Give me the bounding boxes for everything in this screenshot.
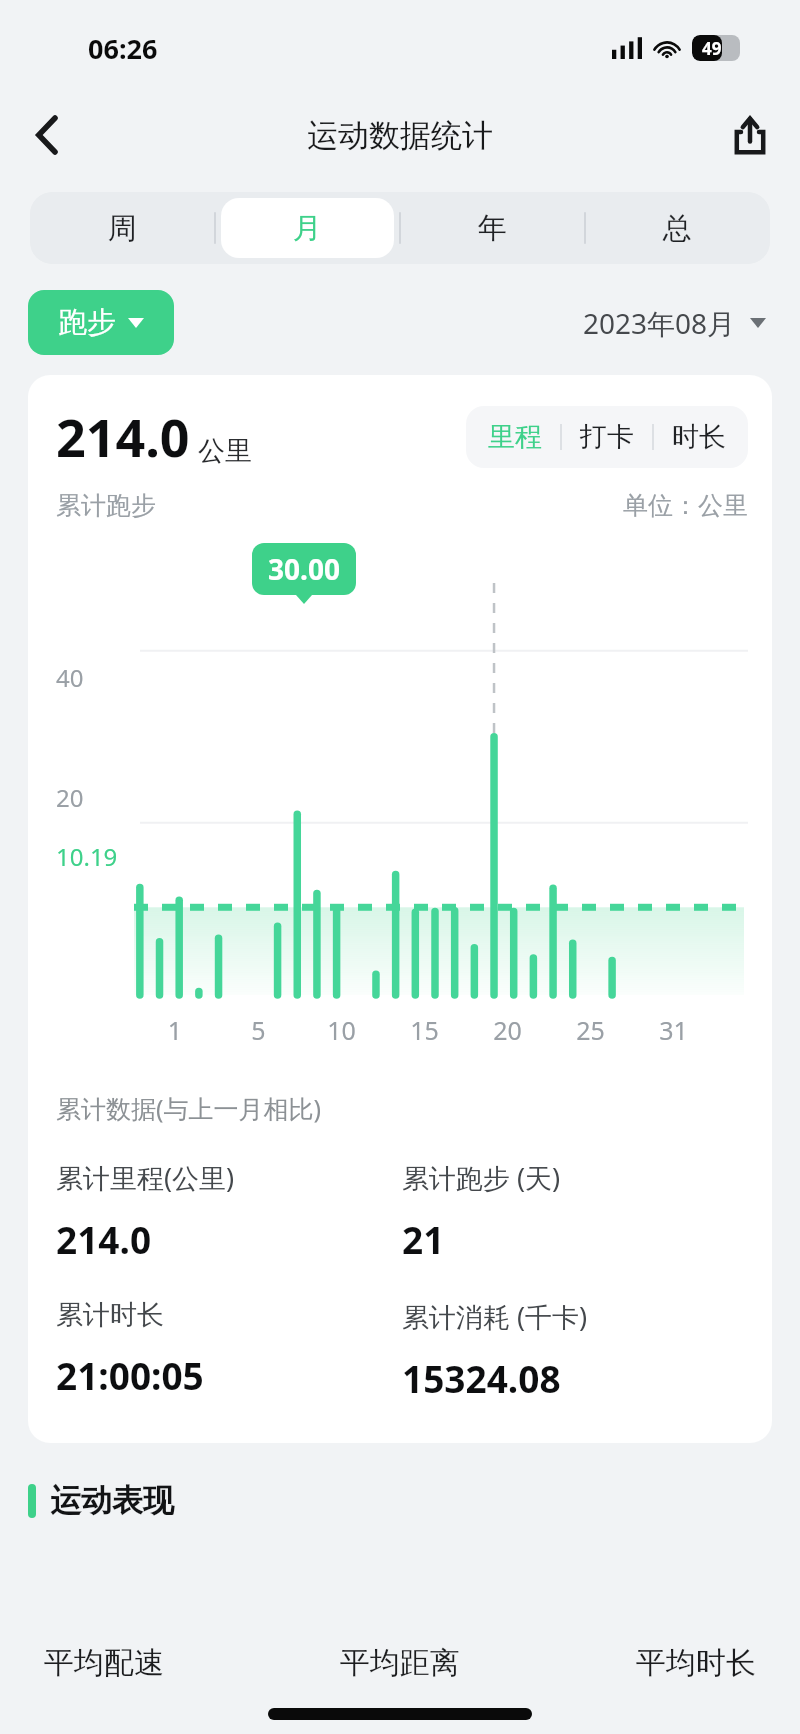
staticText: 里程 bbox=[488, 420, 542, 454]
staticText: 25 bbox=[549, 1013, 632, 1047]
staticText: 累计时长 bbox=[56, 1298, 164, 1332]
staticText: 公里 bbox=[198, 434, 252, 468]
staticText: 49 bbox=[702, 37, 722, 60]
staticText: 打卡 bbox=[580, 420, 634, 454]
button[interactable]: 打卡 bbox=[562, 410, 652, 464]
button[interactable]: 总 bbox=[591, 198, 764, 258]
staticText: 运动数据统计 bbox=[307, 116, 493, 155]
staticText: 10.19 bbox=[56, 840, 118, 873]
staticText: 周 bbox=[108, 210, 137, 247]
button[interactable]: 2023年08月 bbox=[577, 296, 772, 350]
staticText: 月 bbox=[293, 210, 322, 247]
staticText: 5 bbox=[217, 1013, 300, 1047]
staticText: 30.00 bbox=[268, 550, 340, 588]
staticText: 单位：公里 bbox=[623, 490, 748, 521]
staticText: 21:00:05 bbox=[56, 1350, 204, 1400]
staticText: 年 bbox=[478, 210, 507, 247]
staticText: 平均配速 bbox=[44, 1644, 164, 1682]
button[interactable]: 月 bbox=[221, 198, 394, 258]
button[interactable]: 跑步 bbox=[28, 290, 174, 355]
button[interactable]: Back bbox=[20, 107, 76, 163]
staticText: 214.0 bbox=[56, 1214, 152, 1264]
staticText: 累计数据(与上一月相比) bbox=[56, 1091, 322, 1125]
staticText: 21 bbox=[402, 1214, 445, 1264]
staticText: 15324.08 bbox=[402, 1353, 561, 1403]
staticText: 累计消耗 (千卡) bbox=[402, 1298, 588, 1335]
button[interactable]: 时长 bbox=[654, 410, 744, 464]
button[interactable]: 平均时长 bbox=[616, 1632, 776, 1694]
staticText: 1 bbox=[133, 1013, 217, 1047]
staticText: 累计里程(公里) bbox=[56, 1159, 235, 1196]
staticText: 214.0 bbox=[56, 401, 190, 472]
staticText: 2023年08月 bbox=[583, 304, 736, 342]
button[interactable]: 里程 bbox=[470, 410, 560, 464]
staticText: 累计跑步 (天) bbox=[402, 1159, 561, 1196]
staticText: 累计跑步 bbox=[56, 490, 156, 521]
button[interactable]: 平均配速 bbox=[24, 1632, 184, 1694]
staticText: 20 bbox=[56, 781, 84, 814]
button[interactable]: 周 bbox=[36, 198, 209, 258]
staticText: 06:26 bbox=[88, 30, 158, 67]
button[interactable]: 年 bbox=[406, 198, 579, 258]
staticText: 跑步 bbox=[58, 304, 116, 341]
staticText: 时长 bbox=[672, 420, 726, 454]
button[interactable]: 平均距离 bbox=[320, 1632, 480, 1694]
staticText: 40 bbox=[56, 661, 84, 694]
staticText: 10 bbox=[300, 1013, 383, 1047]
staticText: 平均时长 bbox=[636, 1644, 756, 1682]
staticText: 15 bbox=[383, 1013, 466, 1047]
staticText: 运动表现 bbox=[50, 1481, 174, 1520]
staticText: 平均距离 bbox=[340, 1644, 460, 1682]
staticText: 总 bbox=[663, 210, 692, 247]
staticText: 20 bbox=[466, 1013, 549, 1047]
staticText: 31 bbox=[632, 1013, 715, 1047]
button[interactable]: Share bbox=[722, 107, 778, 163]
